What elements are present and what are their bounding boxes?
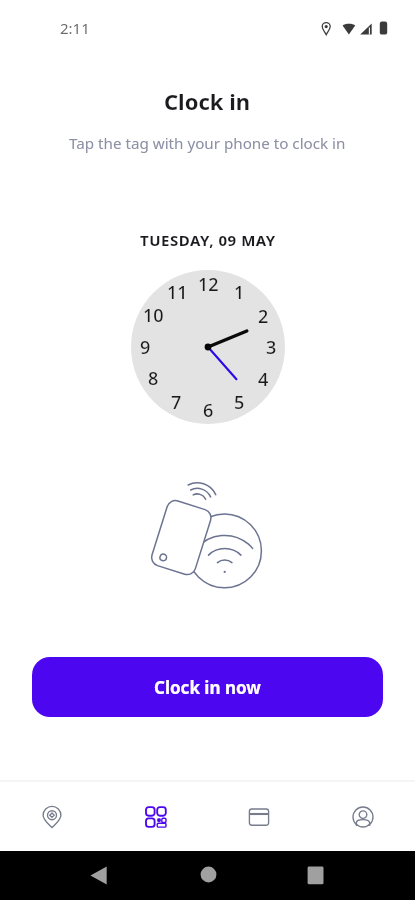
staticText: 7 [171,390,182,415]
button[interactable]: Back [74,851,123,900]
button[interactable]: Locations [0,782,103,851]
staticText: Tap the tag with your phone to clock in [69,133,346,154]
button[interactable]: Home [184,851,233,900]
staticText: 8 [148,366,159,391]
button[interactable]: Clock in now [32,657,383,717]
button[interactable]: Scan [103,782,207,851]
button[interactable]: Recent apps [291,851,340,900]
staticText: 5 [234,390,245,415]
staticText: 9 [140,335,151,360]
staticText: TUESDAY, 09 MAY [140,230,276,250]
staticText: 4 [258,367,269,392]
staticText: 2 [258,304,269,329]
button[interactable]: Profile [311,782,415,851]
staticText: 11 [167,280,188,305]
staticText: Clock in now [154,676,261,699]
staticText: 2:11 [60,18,90,38]
staticText: 6 [203,398,214,423]
staticText: 10 [143,303,164,328]
staticText: 1 [234,280,245,305]
button[interactable]: Cards [207,782,311,851]
staticText: Clock in [164,86,251,116]
staticText: 3 [266,335,277,360]
staticText: 12 [198,272,219,297]
